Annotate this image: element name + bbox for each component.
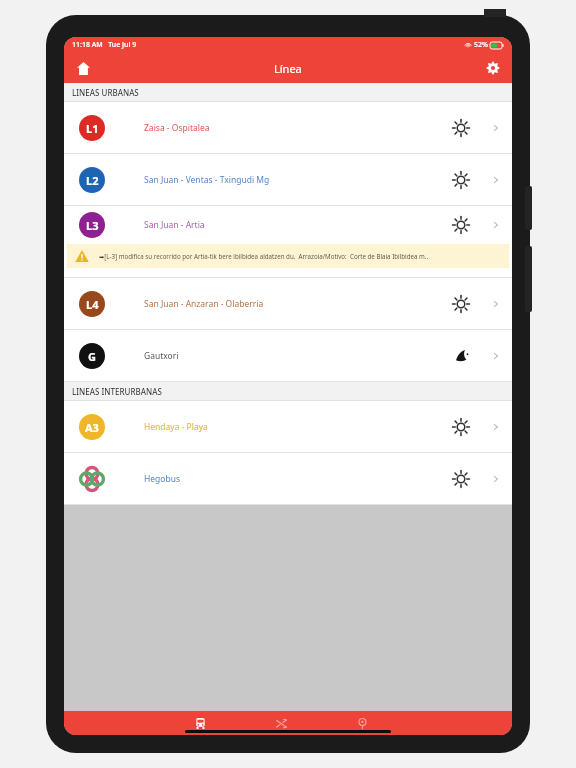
button[interactable]: A3 (64, 401, 512, 453)
staticText: L3 (86, 218, 99, 233)
button[interactable]: Transfers (270, 712, 292, 734)
button[interactable]: Hegobus (64, 453, 512, 505)
staticText: San Juan - Artia (144, 219, 434, 231)
button[interactable]: L3 (64, 206, 512, 278)
button[interactable]: G (64, 330, 512, 382)
button[interactable]: Settings (480, 55, 506, 81)
staticText: LINEAS INTERURBANAS (72, 386, 162, 397)
button[interactable]: Buses (189, 712, 211, 734)
staticText: ➡[L-3] modifica su recorrido por Artia-t… (99, 252, 429, 260)
staticText: Gautxori (144, 350, 434, 362)
staticText: Hegobus (144, 473, 434, 485)
staticText: Zaisa - Ospitalea (144, 122, 434, 134)
button[interactable]: Home (70, 55, 96, 81)
staticText: LINEAS URBANAS (72, 87, 139, 98)
staticText: G (88, 349, 96, 364)
button[interactable]: L4 (64, 278, 512, 330)
staticText: L1 (86, 121, 99, 136)
staticText: Línea (274, 61, 302, 76)
staticText: San Juan - Ventas - Txingudi Mg (144, 174, 434, 186)
button[interactable]: L1 (64, 102, 512, 154)
staticText: Hendaya - Playa (144, 421, 434, 433)
staticText: San Juan - Anzaran - Olaberria (144, 298, 434, 310)
staticText: 11:18 AM Tue Jul 9 (72, 40, 137, 50)
staticText: L4 (86, 297, 99, 312)
staticText: L2 (86, 173, 99, 188)
button[interactable]: Map (351, 712, 373, 734)
staticText: A3 (85, 420, 99, 435)
button[interactable]: L2 (64, 154, 512, 206)
staticText: 52% (474, 40, 488, 50)
